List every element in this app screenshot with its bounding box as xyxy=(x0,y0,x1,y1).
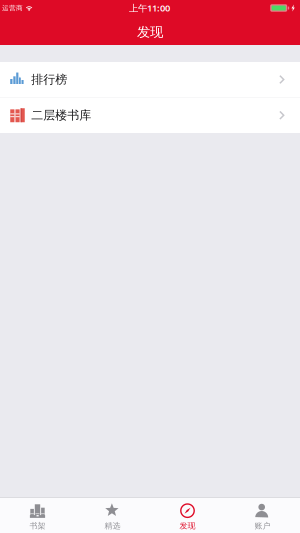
button[interactable]: 发现 xyxy=(150,496,225,533)
staticText: 运营商 xyxy=(2,4,23,12)
button[interactable]: 二层楼书库 xyxy=(0,97,300,133)
staticText: 上午11:00 xyxy=(129,2,170,14)
staticText: 发现 xyxy=(179,521,195,531)
staticText: 账户 xyxy=(254,521,270,531)
button[interactable]: 精选 xyxy=(75,496,150,533)
button[interactable]: 账户 xyxy=(225,496,300,533)
staticText: 书架 xyxy=(29,521,45,531)
staticText: 精选 xyxy=(104,521,120,531)
staticText: 二层楼书库 xyxy=(31,108,91,123)
button[interactable]: 书架 xyxy=(0,496,75,533)
staticText: 发现 xyxy=(137,24,163,40)
staticText: 排行榜 xyxy=(31,72,67,87)
button[interactable]: 排行榜 xyxy=(0,62,300,97)
